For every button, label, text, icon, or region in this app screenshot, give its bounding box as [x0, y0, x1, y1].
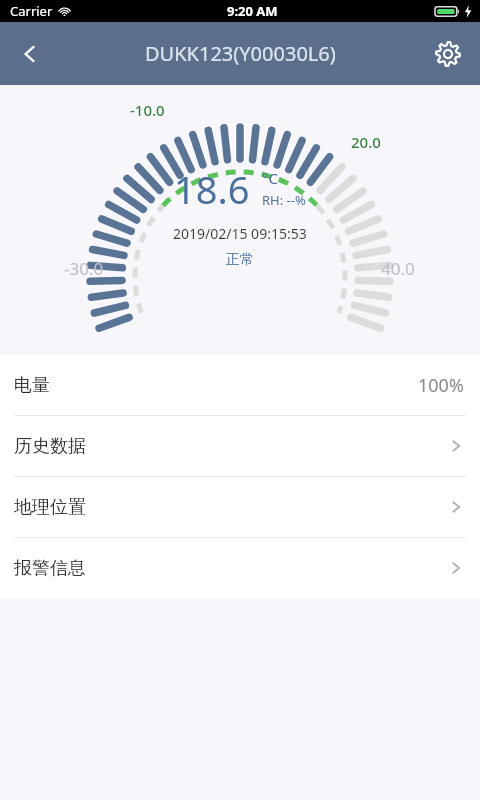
staticText: -30.0 — [64, 257, 104, 280]
staticText: 18.6 — [174, 163, 250, 215]
button[interactable]: 历史数据 — [0, 416, 480, 476]
staticText: 电量 — [14, 374, 50, 397]
button[interactable]: 地理位置 — [0, 477, 480, 537]
staticText: 2019/02/15 09:15:53 — [173, 224, 307, 243]
button[interactable]: Back — [4, 28, 56, 80]
staticText: Carrier — [10, 2, 53, 20]
staticText: 40.0 — [381, 257, 415, 280]
staticText: 100% — [418, 373, 464, 398]
staticText: 地理位置 — [14, 496, 86, 519]
button[interactable]: Settings — [422, 28, 474, 80]
staticText: 报警信息 — [14, 557, 86, 580]
staticText: RH: --% — [262, 191, 306, 209]
button[interactable]: 电量 — [0, 355, 480, 415]
staticText: 9:20 AM — [227, 2, 278, 20]
staticText: 20.0 — [351, 132, 381, 152]
staticText: °C — [262, 168, 278, 188]
staticText: 历史数据 — [14, 435, 86, 458]
button[interactable]: 报警信息 — [0, 538, 480, 598]
staticText: DUKK123(Y00030L6) — [145, 40, 336, 67]
staticText: 正常 — [226, 251, 254, 269]
staticText: -10.0 — [130, 100, 165, 120]
